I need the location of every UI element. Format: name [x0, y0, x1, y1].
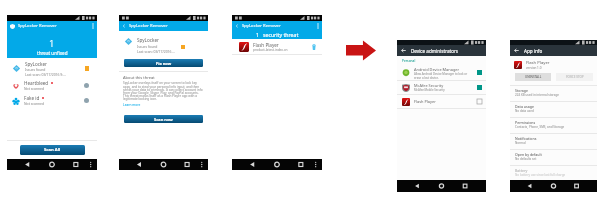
button[interactable]: McAfee Security [397, 81, 486, 94]
staticText: Not scanned [24, 86, 45, 91]
staticText: Fake id [24, 95, 40, 101]
staticText: SpyLocker Remover [129, 23, 168, 29]
staticText: Scan All [44, 147, 61, 153]
staticText: Permissions [515, 120, 536, 125]
staticText: Android Device Manager [414, 67, 460, 72]
staticText: Personal [402, 59, 416, 63]
staticText: FORCE STOP [566, 75, 584, 79]
staticText: Flash Player [253, 42, 279, 48]
staticText: SpyLocker overlays itself on your screen… [123, 81, 204, 100]
staticText: Fix now [156, 61, 172, 66]
staticText: Data usage [515, 104, 534, 109]
button[interactable]: Permissions [510, 118, 597, 133]
staticText: 1 [49, 37, 55, 50]
button[interactable]: More options [89, 21, 97, 31]
staticText: Heartbleed [24, 80, 49, 86]
button[interactable]: Learn more [123, 103, 141, 107]
staticText: Last scan: 03/17/2016 ... [137, 49, 176, 54]
button[interactable]: Toggle admin [477, 99, 482, 104]
staticText: Device administrators [411, 48, 459, 54]
staticText: No data used [515, 109, 534, 113]
staticText: No battery use since last full charge [515, 173, 566, 177]
button[interactable]: UNINSTALL [515, 73, 551, 81]
button[interactable]: SpyLocker [7, 59, 97, 78]
staticText: Issues found [25, 67, 46, 72]
button[interactable]: Back [397, 45, 486, 56]
staticText: version 1.0 [526, 66, 542, 70]
staticText: Not scanned [24, 101, 45, 106]
button[interactable]: Scan All [20, 145, 85, 155]
staticText: McAfee Mobile Security [414, 88, 445, 92]
other: Back [401, 48, 406, 53]
button[interactable]: More options [314, 21, 322, 30]
staticText: 224 KB used in internal storage [515, 93, 559, 97]
button[interactable]: Notifications [510, 134, 597, 149]
staticText: Open by default [515, 152, 542, 157]
staticText: threat unfixed [37, 50, 68, 56]
staticText: Storage [515, 88, 528, 93]
staticText: SpyLocker Remover [18, 23, 57, 29]
button[interactable]: Back [510, 45, 597, 56]
other: Back [514, 48, 519, 53]
staticText: Issues found [137, 44, 158, 49]
button[interactable]: SpyLocker Remover [7, 21, 97, 31]
button[interactable]: Storage [510, 86, 597, 101]
button[interactable]: Back [232, 21, 322, 30]
button[interactable]: Android Device Manager [397, 65, 486, 80]
staticText: Battery [515, 168, 528, 173]
staticText: Flash Player [414, 99, 436, 104]
staticText: UNINSTALL [525, 75, 542, 79]
button[interactable]: Back [119, 21, 208, 31]
button[interactable]: Flash Player [397, 95, 486, 108]
button[interactable]: Fix now [124, 59, 203, 67]
button[interactable]: Scan now [124, 115, 203, 123]
staticText: Flash Player [526, 60, 550, 66]
button[interactable]: Data usage [510, 102, 597, 117]
staticText: SpyLocker Remover [242, 23, 281, 29]
other: Delete [312, 44, 316, 50]
staticText: App info [524, 48, 543, 54]
staticText: SpyLocker [25, 61, 47, 67]
staticText: Normal [515, 141, 526, 145]
button[interactable]: Open by default [510, 150, 597, 165]
button[interactable]: Flash Player [232, 39, 322, 54]
button[interactable]: Battery [510, 166, 597, 180]
staticText: 1 security threat [256, 31, 299, 38]
staticText: Scan now [154, 117, 173, 122]
staticText: McAfee Security [414, 83, 444, 88]
button[interactable]: FORCE STOP [556, 73, 593, 81]
staticText: SpyLocker [137, 37, 159, 43]
staticText: Contacts, Phone, SMS, and Storage [515, 125, 565, 129]
other: Back [122, 24, 126, 28]
button[interactable]: Heartbleed [7, 78, 97, 93]
staticText: About this threat [123, 75, 155, 80]
staticText: Last scan: 03/17/2016 9:... [25, 72, 66, 77]
button[interactable]: Fake id [7, 93, 97, 108]
staticText: Notifications [515, 136, 537, 141]
staticText: product-latest.index.cn [253, 48, 288, 52]
staticText: Allow Android Device Manager to lock or … [414, 72, 468, 79]
staticText: No defaults set [515, 157, 537, 161]
other: Back [235, 24, 239, 28]
